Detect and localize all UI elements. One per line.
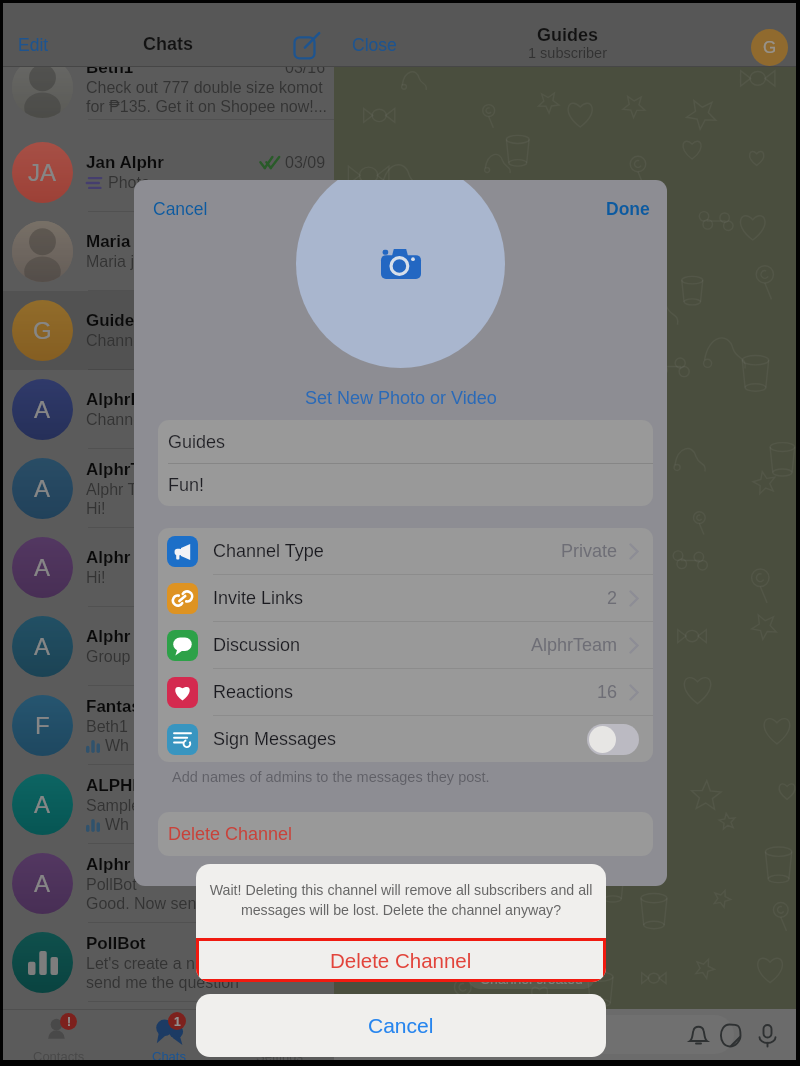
staticText: A <box>34 791 51 818</box>
staticText: Contacts <box>33 1049 85 1060</box>
staticText: Photo <box>108 174 150 192</box>
button[interactable]: Cancel <box>196 994 606 1057</box>
button[interactable]: ! <box>3 1009 114 1060</box>
staticText: A <box>34 870 51 897</box>
staticText: Channe <box>86 411 143 429</box>
staticText: PollBot <box>86 876 137 894</box>
staticText: Beth1 <box>86 58 134 77</box>
staticText: Discussion <box>213 635 301 655</box>
button[interactable]: Beth1 <box>3 54 334 120</box>
staticText: Channel Type <box>213 541 324 561</box>
staticText: A <box>34 633 51 660</box>
button[interactable]: Sign Messages <box>158 716 653 762</box>
staticText: Check out 777 double size komot <box>86 79 323 97</box>
button[interactable]: Stickers <box>714 1020 744 1050</box>
button[interactable]: Mute <box>683 1020 713 1050</box>
staticText: Beth1 <box>86 718 128 736</box>
button[interactable]: Guides <box>158 420 653 463</box>
staticText: Reactions <box>213 682 294 702</box>
staticText: Channe <box>86 332 143 350</box>
button[interactable]: Reactions <box>158 669 653 715</box>
staticText: Settings <box>256 1049 303 1060</box>
button[interactable]: Fun! <box>158 464 653 506</box>
staticText: Let's create a n <box>86 955 195 973</box>
staticText: A <box>34 554 51 581</box>
staticText: Sign Messages <box>213 729 337 749</box>
staticText: Fantas <box>86 697 141 716</box>
staticText: Chats <box>143 34 194 54</box>
staticText: Sample <box>86 797 141 815</box>
staticText: Maria j <box>86 253 135 271</box>
button[interactable]: A <box>3 844 334 923</box>
staticText: AlphrT <box>86 460 141 479</box>
button[interactable]: A <box>3 370 334 449</box>
staticText: Cancel <box>368 1014 434 1037</box>
button[interactable]: Settings <box>224 1009 334 1060</box>
staticText: 2 <box>607 588 618 608</box>
button[interactable]: Done <box>606 199 650 219</box>
staticText: Group <box>86 648 135 666</box>
button[interactable]: Channel Type <box>158 528 653 574</box>
staticText: Delete Channel <box>330 949 472 972</box>
staticText: 1 subscriber <box>528 45 607 61</box>
button[interactable]: G <box>3 291 334 370</box>
staticText: AlphrTeam <box>531 635 618 655</box>
button[interactable]: A <box>3 607 334 686</box>
staticText: 03/09 <box>285 154 326 172</box>
staticText: G <box>763 38 777 57</box>
staticText: ! <box>67 1015 71 1028</box>
staticText: PollBot <box>86 934 146 953</box>
staticText: Alphr T <box>86 627 146 646</box>
button[interactable]: F <box>3 686 334 765</box>
staticText: 03/16 <box>285 59 326 77</box>
button[interactable] <box>296 180 505 368</box>
staticText: F <box>35 712 50 739</box>
button[interactable]: Channel avatar <box>751 29 788 66</box>
staticText: for ₱135. Get it on Shopee now!... <box>86 98 328 116</box>
button[interactable]: Delete Channel <box>196 938 606 982</box>
button[interactable]: Close <box>352 35 397 55</box>
staticText: Maria <box>86 232 131 251</box>
button[interactable]: A <box>3 449 334 528</box>
staticText: Guides <box>86 311 144 330</box>
staticText: 1 <box>174 1015 181 1028</box>
button[interactable]: Delete Channel <box>158 812 653 856</box>
button[interactable]: New message <box>292 31 320 59</box>
staticText: Hi! <box>86 500 106 518</box>
staticText: Alphr g <box>86 855 146 874</box>
staticText: Invite Links <box>213 588 304 608</box>
button[interactable]: Set New Photo or Video <box>305 388 497 408</box>
staticText: Guides <box>168 432 226 452</box>
button[interactable]: Sign messages <box>587 724 639 755</box>
staticText: Wait! Deleting this channel will remove … <box>207 882 595 918</box>
staticText: Good. Now send <box>86 895 206 913</box>
button[interactable]: PollBot <box>3 923 334 1002</box>
staticText: Jan Alphr <box>86 153 164 172</box>
button[interactable]: A <box>3 528 334 607</box>
staticText: Fun! <box>168 475 205 495</box>
staticText: send me the question <box>86 974 239 992</box>
staticText: Add names of admins to the messages they… <box>172 769 490 785</box>
button[interactable]: JA <box>3 133 334 212</box>
staticText: Chats <box>152 1049 186 1060</box>
button[interactable]: Invite Links <box>158 575 653 621</box>
staticText: G <box>33 317 52 344</box>
staticText: Guides <box>537 25 599 45</box>
staticText: Hi! <box>86 569 106 587</box>
staticText: Wh <box>105 737 129 755</box>
button[interactable]: Maria <box>3 212 334 291</box>
button[interactable]: Voice message <box>752 1020 782 1050</box>
staticText: JA <box>28 159 57 186</box>
staticText: Private <box>561 541 618 561</box>
button[interactable]: Cancel <box>153 199 208 219</box>
staticText: 16 <box>597 682 618 702</box>
button[interactable]: A <box>3 765 334 844</box>
button[interactable]: 1 <box>114 1009 224 1060</box>
button[interactable]: Edit <box>18 35 49 55</box>
staticText: A <box>34 396 51 423</box>
button[interactable]: Discussion <box>158 622 653 668</box>
staticText: ALPHR <box>86 776 145 795</box>
staticText: Channel created <box>480 971 583 987</box>
staticText: Delete Channel <box>168 824 293 844</box>
staticText: Alphr T <box>86 548 146 567</box>
